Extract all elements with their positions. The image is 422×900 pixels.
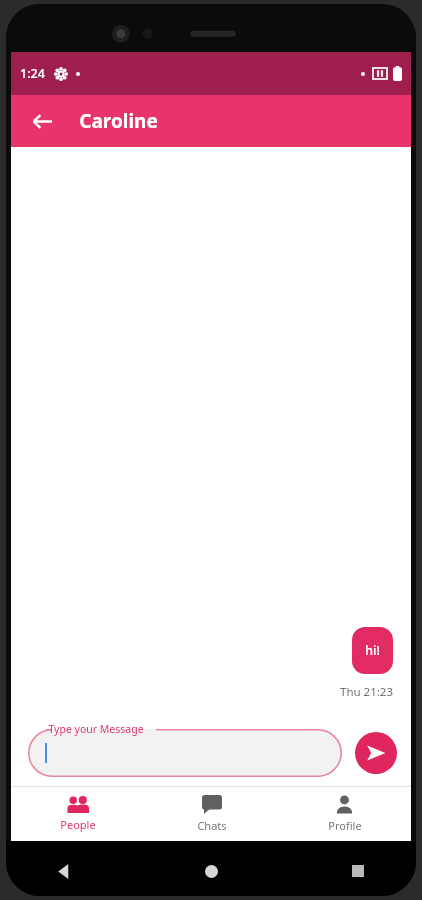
button[interactable]: Back: [46, 853, 82, 889]
button[interactable]: Back: [23, 102, 61, 140]
staticText: Chats: [197, 818, 227, 833]
button[interactable]: [28, 729, 342, 777]
staticText: Caroline: [79, 108, 158, 134]
button[interactable]: Profile: [278, 787, 411, 841]
staticText: hi!: [365, 642, 380, 659]
staticText: Thu 21:23: [340, 684, 393, 700]
staticText: Type your Message: [48, 722, 144, 736]
button[interactable]: People: [11, 787, 145, 841]
button[interactable]: hi!: [352, 627, 393, 674]
staticText: People: [60, 817, 96, 832]
button[interactable]: Send: [355, 732, 397, 774]
staticText: 1:24: [20, 65, 45, 82]
button[interactable]: Chats: [145, 787, 278, 841]
button[interactable]: Recents: [340, 853, 376, 889]
staticText: Profile: [328, 818, 362, 833]
button[interactable]: Home: [193, 853, 229, 889]
